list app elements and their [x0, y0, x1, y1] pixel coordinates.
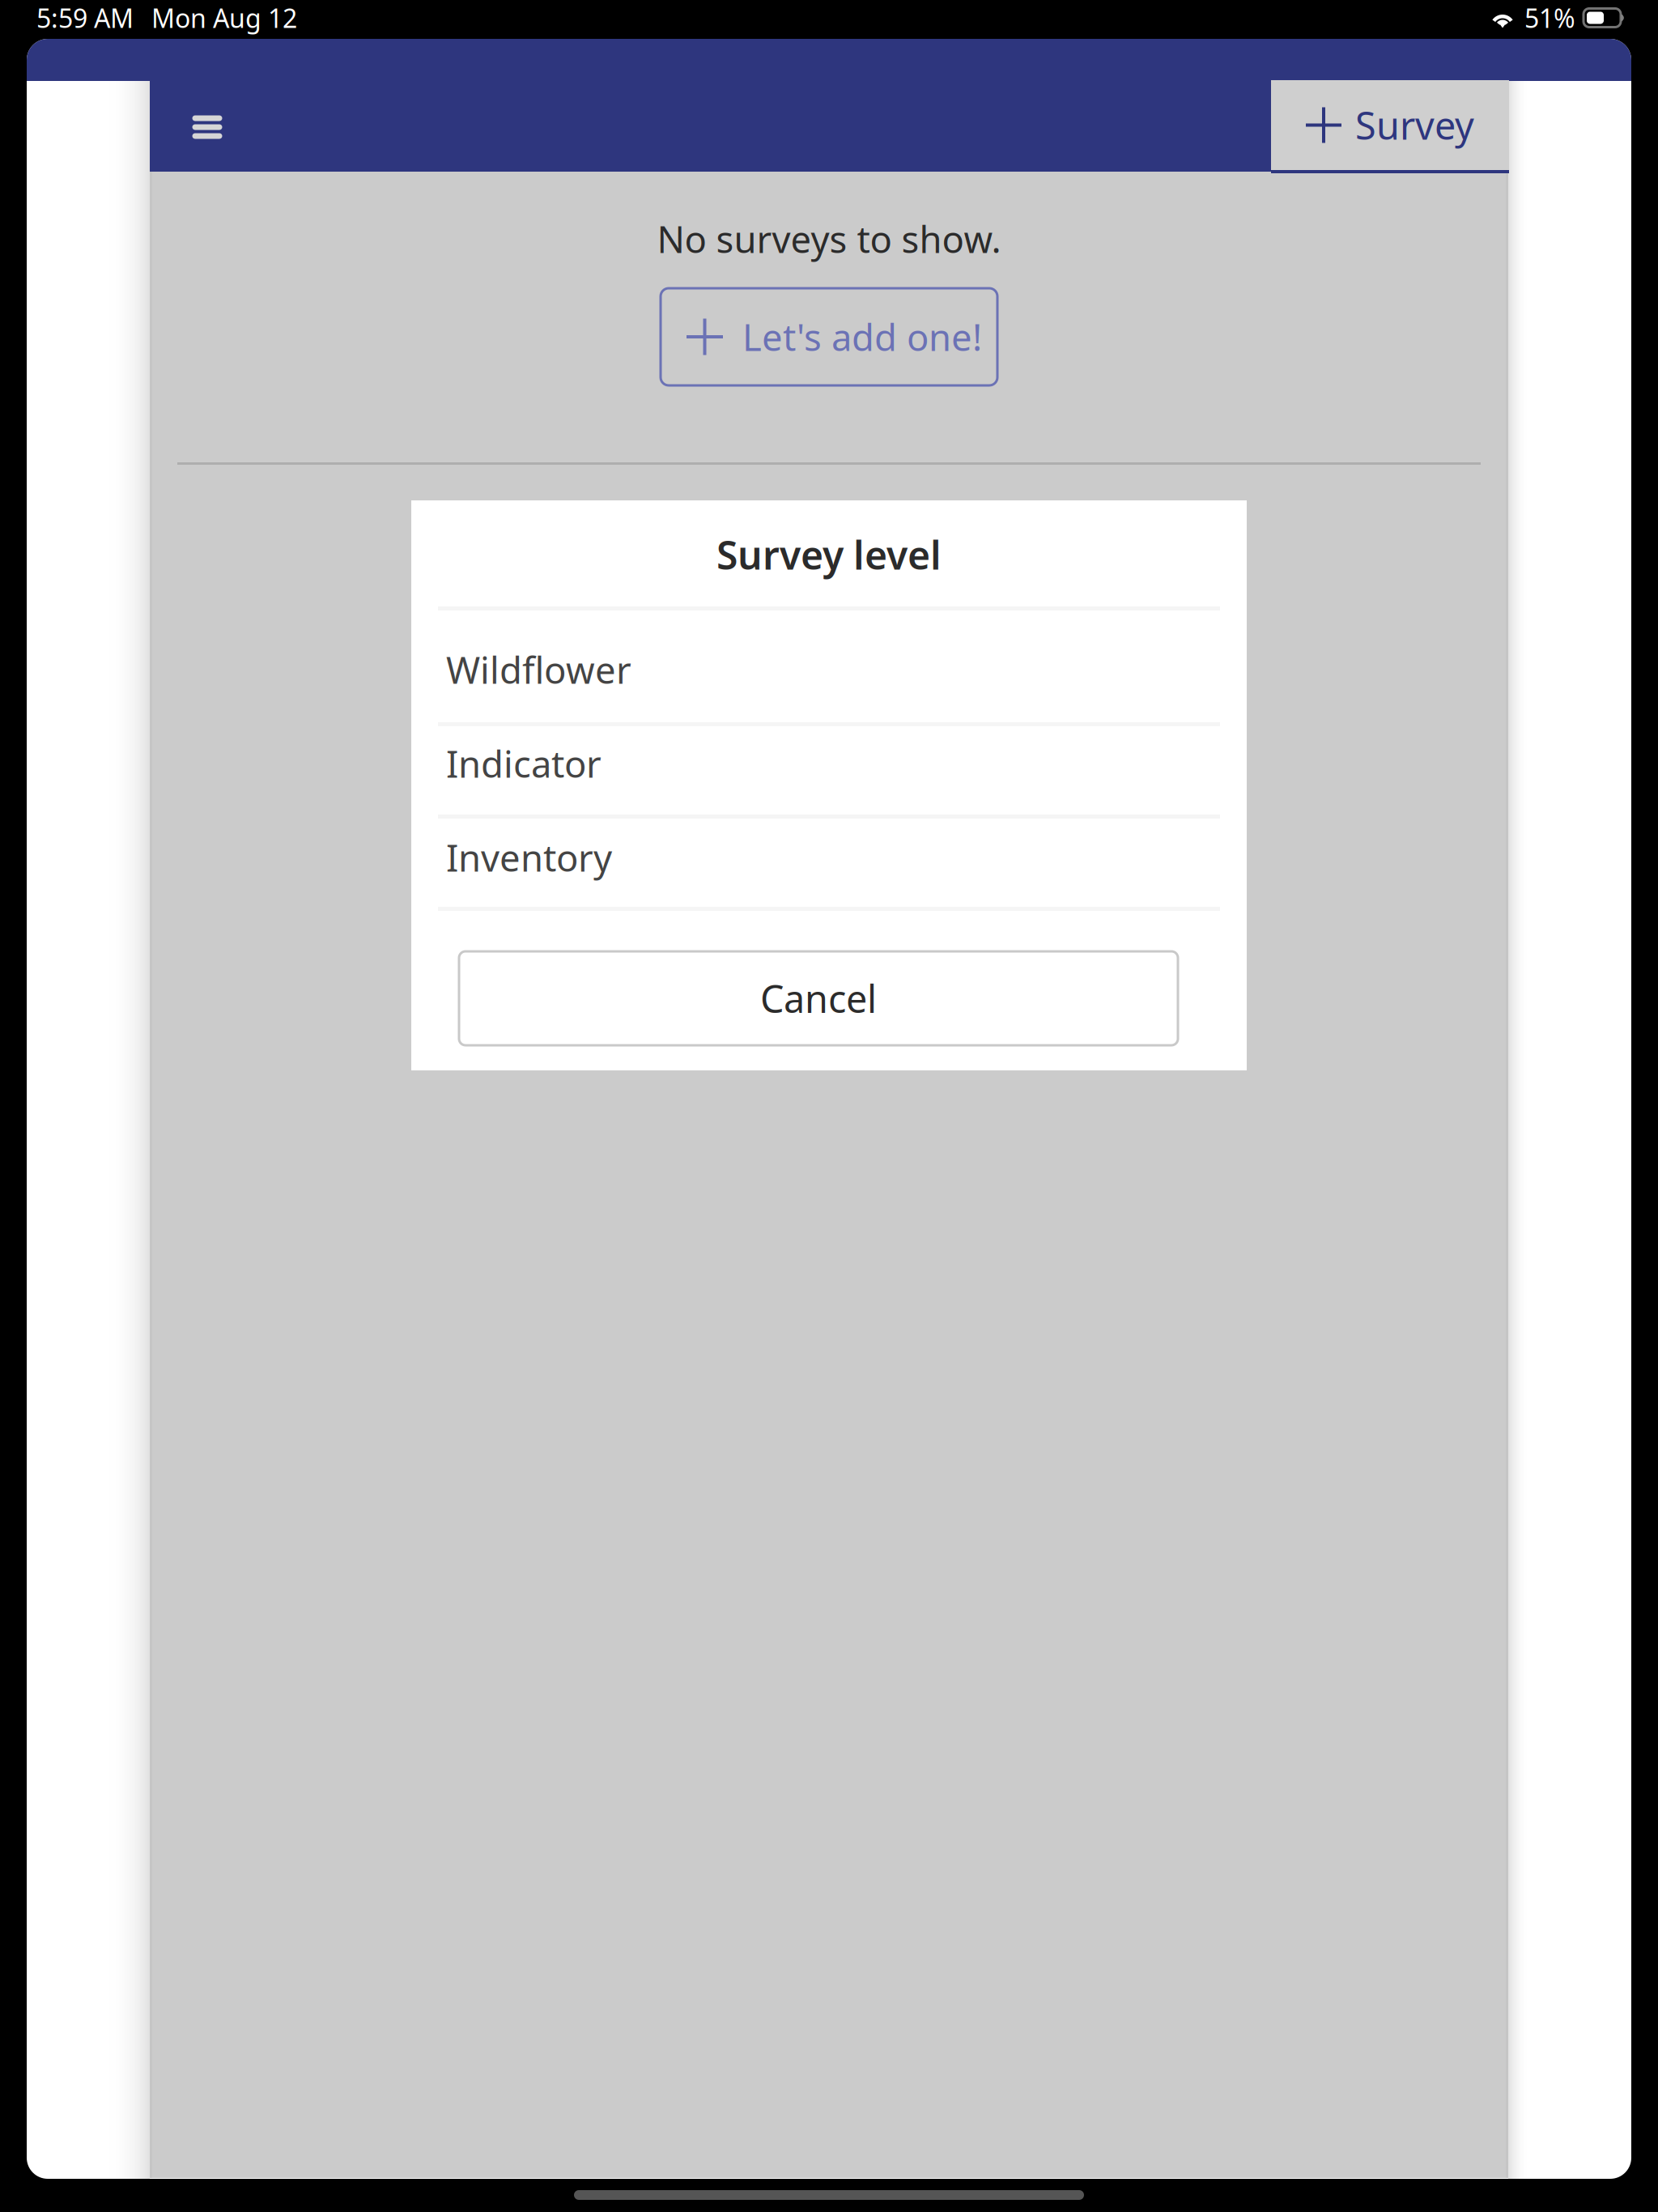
staticText: Survey level: [716, 529, 942, 580]
button[interactable]: Cancel: [459, 951, 1178, 1045]
staticText: Inventory: [446, 833, 612, 882]
staticText: 51%: [1524, 1, 1575, 35]
staticText: Let's add one!: [742, 312, 982, 361]
button[interactable]: Wildflower: [411, 644, 1247, 695]
staticText: Wildflower: [446, 645, 631, 694]
staticText: Mon Aug 12: [151, 1, 297, 35]
button[interactable]: Inventory: [411, 832, 1247, 883]
staticText: Cancel: [760, 973, 877, 1023]
staticText: No surveys to show.: [657, 214, 1001, 263]
button[interactable]: Let's add one!: [661, 288, 997, 385]
button[interactable]: Survey: [1271, 80, 1509, 170]
staticText: Indicator: [446, 739, 602, 788]
staticText: 5:59 AM: [36, 1, 134, 35]
staticText: Survey: [1355, 100, 1474, 150]
button[interactable]: Indicator: [411, 738, 1247, 789]
button[interactable]: Show sidebar: [171, 91, 244, 164]
